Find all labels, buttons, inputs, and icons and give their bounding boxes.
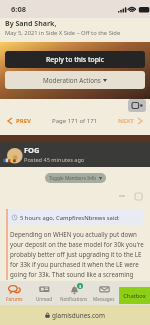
staticText: 6:08 xyxy=(11,4,26,14)
button[interactable]: Unread xyxy=(29,281,59,305)
button[interactable]: Forums xyxy=(0,281,29,305)
staticText: 5 hours ago, CampfiresNbrews said: xyxy=(20,214,120,222)
button[interactable]: More options xyxy=(116,191,128,201)
staticText: Chatbox xyxy=(123,292,146,300)
staticText: Depending on WHEN you actually put down … xyxy=(10,230,146,278)
staticText: FOG xyxy=(24,145,40,155)
staticText: NEXT xyxy=(118,117,134,125)
button[interactable]: PREV xyxy=(8,117,31,125)
staticText: May 5, 2021 in Side X Side – Off to the … xyxy=(5,29,121,37)
button[interactable]: Reply to this topic xyxy=(5,51,145,68)
button[interactable]: Messages xyxy=(89,281,119,305)
staticText: By Sand Shark, xyxy=(5,19,57,29)
staticText: Moderation Actions xyxy=(43,76,101,85)
staticText: Reply to this topic xyxy=(46,55,105,64)
staticText: Messages xyxy=(93,296,115,302)
staticText: Page 171 of 171 xyxy=(52,117,98,125)
staticText: Forums xyxy=(6,296,23,302)
staticText: PREV xyxy=(16,117,31,125)
button[interactable]: Save post xyxy=(132,190,144,202)
staticText: Posted 45 minutes ago xyxy=(24,156,85,164)
button[interactable]: NEXT xyxy=(118,117,142,125)
staticText: Unread xyxy=(36,296,52,302)
staticText: glamisdunes.com xyxy=(52,311,105,320)
button[interactable]: 3 xyxy=(59,281,89,305)
button[interactable]: Picture in picture xyxy=(128,99,146,112)
staticText: Toggle Members Info xyxy=(49,175,97,181)
button[interactable]: Chatbox xyxy=(119,287,150,304)
button[interactable]: Toggle Members Info xyxy=(45,173,106,183)
staticText: Notifications xyxy=(60,296,88,302)
button[interactable]: Moderation Actions xyxy=(5,71,145,89)
staticText: 3 xyxy=(79,284,82,289)
